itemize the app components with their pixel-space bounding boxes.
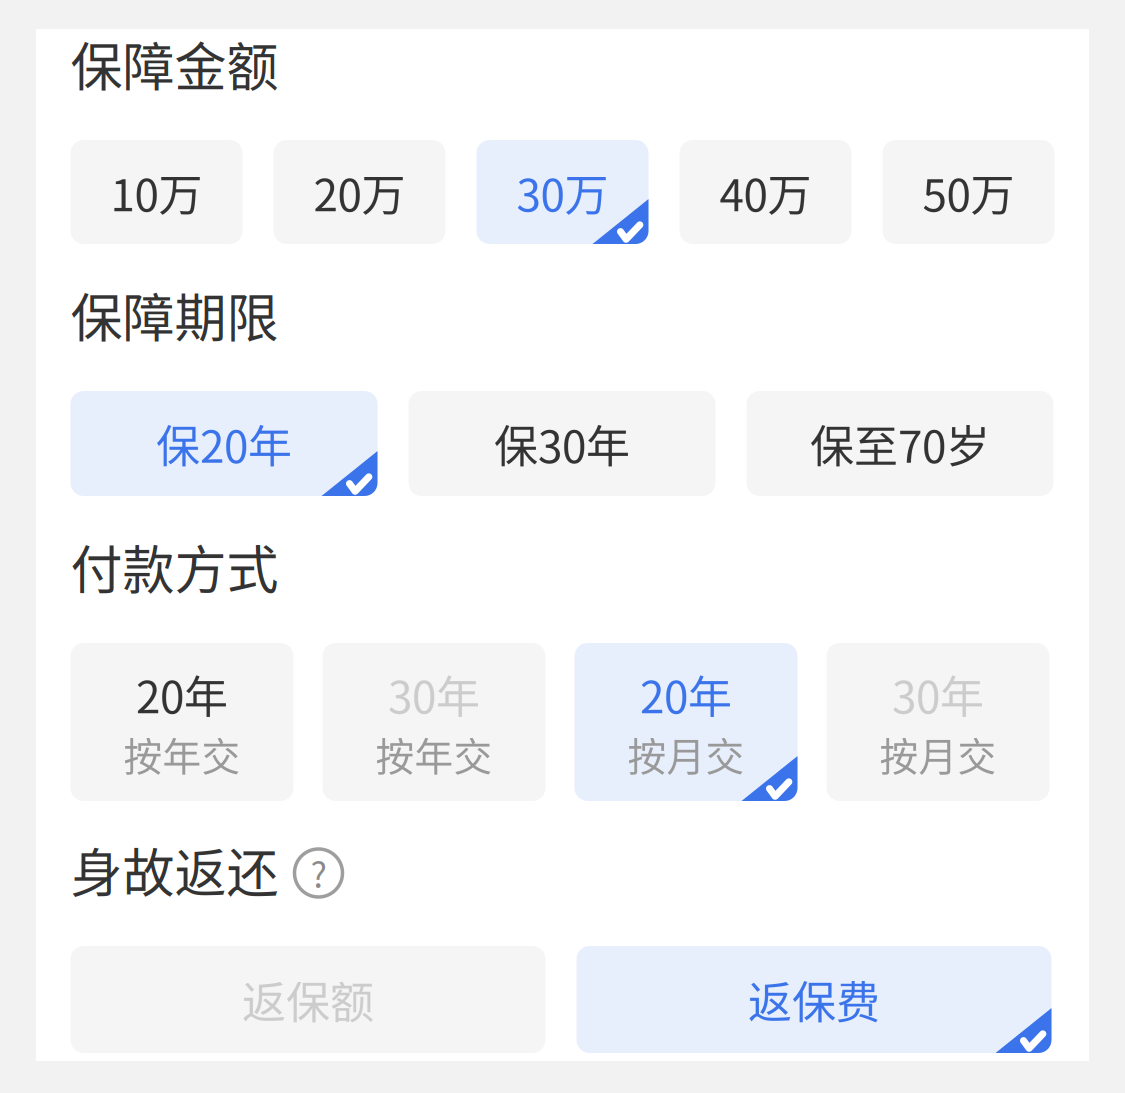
staticText: 保障金额 [70, 26, 278, 101]
staticText: 20万 [313, 160, 405, 224]
staticText: 保20年 [156, 412, 292, 475]
staticText: 50万 [922, 160, 1014, 224]
staticText: 按月交 [879, 726, 996, 782]
staticText: 身故返还 [70, 832, 278, 907]
button[interactable]: 保30年 [408, 391, 715, 496]
staticText: 20年 [640, 662, 732, 726]
button[interactable]: 30年 [826, 643, 1049, 801]
staticText: 保障期限 [70, 277, 278, 352]
staticText: 30年 [892, 662, 984, 726]
button[interactable]: 10万 [70, 140, 242, 244]
button[interactable]: 30万 [476, 140, 648, 244]
button[interactable]: 20年 [574, 643, 797, 801]
staticText: 保30年 [494, 412, 630, 475]
button[interactable]: 返保费 [576, 946, 1051, 1053]
button[interactable]: 40万 [679, 140, 851, 244]
button[interactable]: 20万 [273, 140, 445, 244]
staticText: 按年交 [375, 726, 492, 782]
staticText: ? [310, 848, 326, 898]
staticText: 10万 [110, 160, 202, 224]
staticText: 返保额 [242, 968, 374, 1031]
button[interactable]: 20年 [70, 643, 293, 801]
button[interactable]: About death benefit refund [294, 842, 342, 897]
staticText: 保至70岁 [810, 412, 990, 475]
button[interactable]: 50万 [882, 140, 1054, 244]
staticText: 30万 [516, 160, 608, 224]
button[interactable]: 保20年 [70, 391, 377, 496]
button[interactable]: 保至70岁 [746, 391, 1053, 496]
staticText: 按年交 [123, 726, 240, 782]
staticText: 返保费 [748, 968, 880, 1031]
staticText: 30年 [388, 662, 480, 726]
staticText: 40万 [719, 160, 811, 224]
staticText: 付款方式 [70, 529, 278, 604]
staticText: 20年 [136, 662, 228, 726]
button[interactable]: 返保额 [70, 946, 545, 1053]
button[interactable]: 30年 [322, 643, 545, 801]
staticText: 按月交 [627, 726, 744, 782]
